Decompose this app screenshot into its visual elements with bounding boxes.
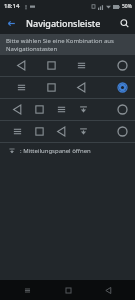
staticText: : Mitteilungspanel öffnen: [20, 147, 91, 155]
staticText: 18:14: [4, 2, 20, 10]
staticText: Navigationsleiste: [26, 17, 113, 29]
button[interactable]: Suchen: [113, 12, 135, 34]
button[interactable]: Zurück: [0, 12, 22, 34]
button[interactable]: [0, 77, 135, 98]
staticText: Bitte wählen Sie eine Kombination aus Na…: [6, 37, 114, 53]
button[interactable]: Menü: [14, 280, 40, 300]
button[interactable]: [0, 99, 135, 120]
button[interactable]: Startseite: [55, 280, 81, 300]
button[interactable]: Zurück: [95, 280, 121, 300]
button[interactable]: [0, 121, 135, 142]
button[interactable]: [0, 55, 135, 76]
staticText: 50%: [122, 3, 132, 10]
